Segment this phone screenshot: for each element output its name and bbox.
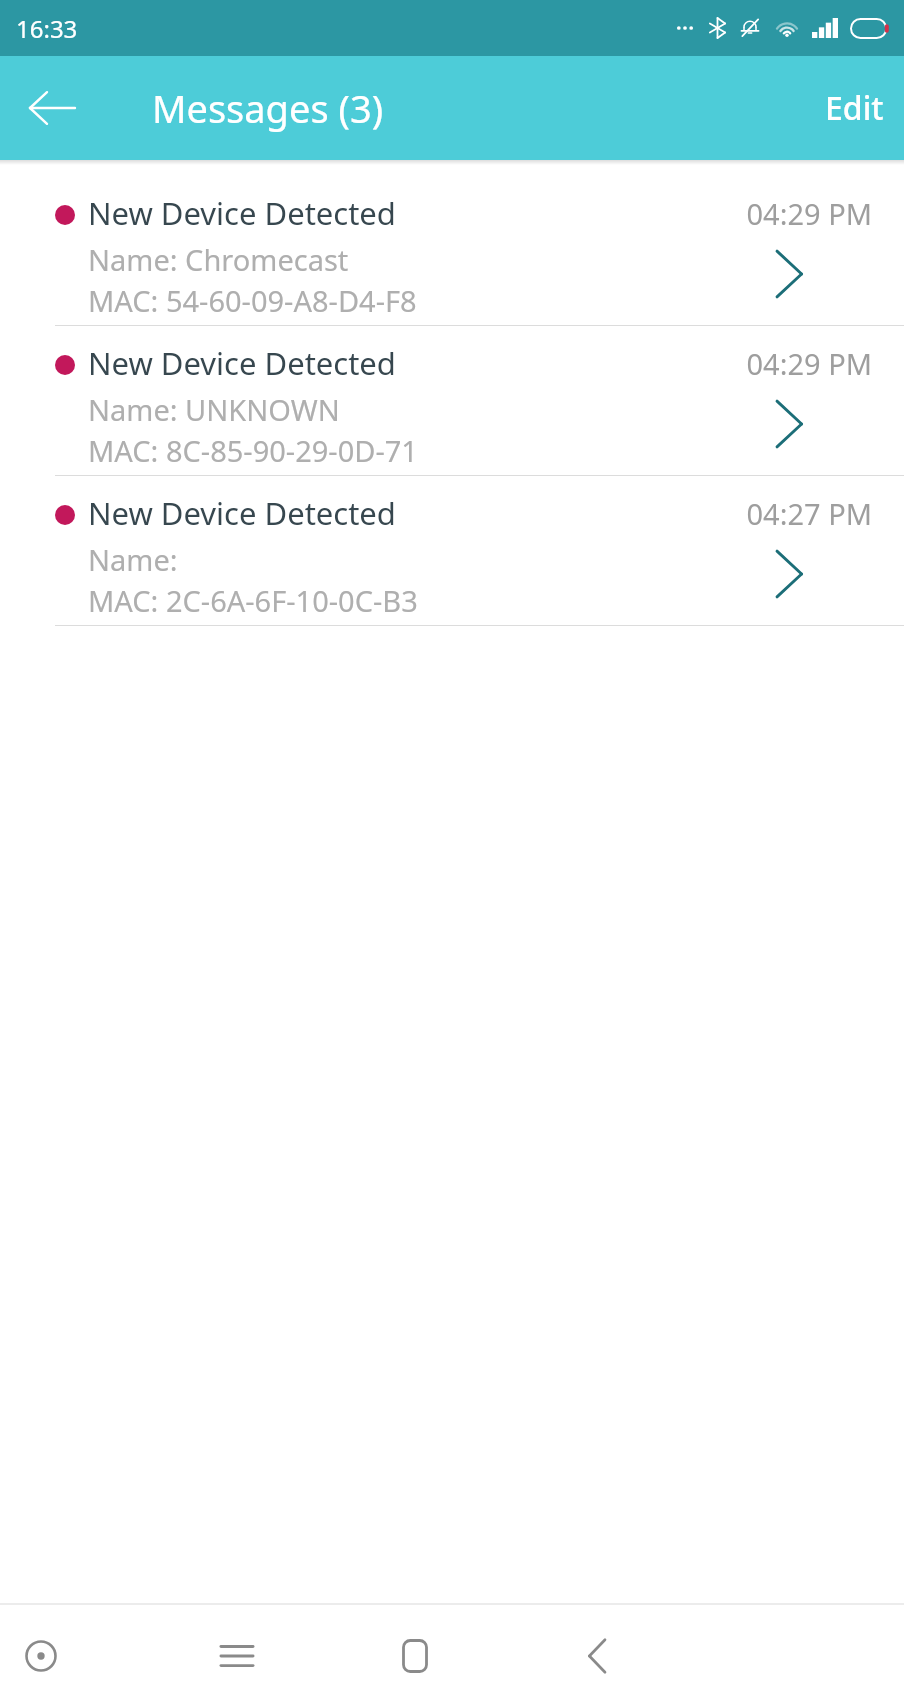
staticText: New Device Detected — [88, 492, 396, 534]
button[interactable]: Edit — [805, 72, 904, 144]
button[interactable]: New Device Detected — [0, 476, 904, 625]
staticText: MAC: 8C-85-90-29-0D-71 — [88, 431, 418, 470]
staticText: Messages (3) — [152, 82, 384, 134]
staticText: MAC: 54-60-09-A8-D4-F8 — [88, 281, 417, 320]
staticText: Name: — [88, 540, 178, 579]
staticText: Edit — [825, 86, 884, 130]
staticText: 16:33 — [16, 12, 78, 45]
staticText: New Device Detected — [88, 342, 396, 384]
staticText: 04:29 PM — [746, 344, 872, 383]
staticText: MAC: 2C-6A-6F-10-0C-B3 — [88, 581, 418, 620]
staticText: 04:27 PM — [746, 494, 872, 533]
staticText: New Device Detected — [88, 192, 396, 234]
staticText: Name: Chromecast — [88, 240, 349, 279]
button[interactable]: Menu — [192, 1605, 282, 1707]
staticText: Name: UNKNOWN — [88, 390, 340, 429]
button[interactable]: Back — [552, 1605, 642, 1707]
button[interactable]: Assistant — [0, 1605, 86, 1707]
button[interactable]: New Device Detected — [0, 326, 904, 475]
button[interactable]: Back — [14, 70, 90, 146]
button[interactable]: Home — [370, 1605, 460, 1707]
staticText: 04:29 PM — [746, 194, 872, 233]
button[interactable]: New Device Detected — [0, 176, 904, 325]
